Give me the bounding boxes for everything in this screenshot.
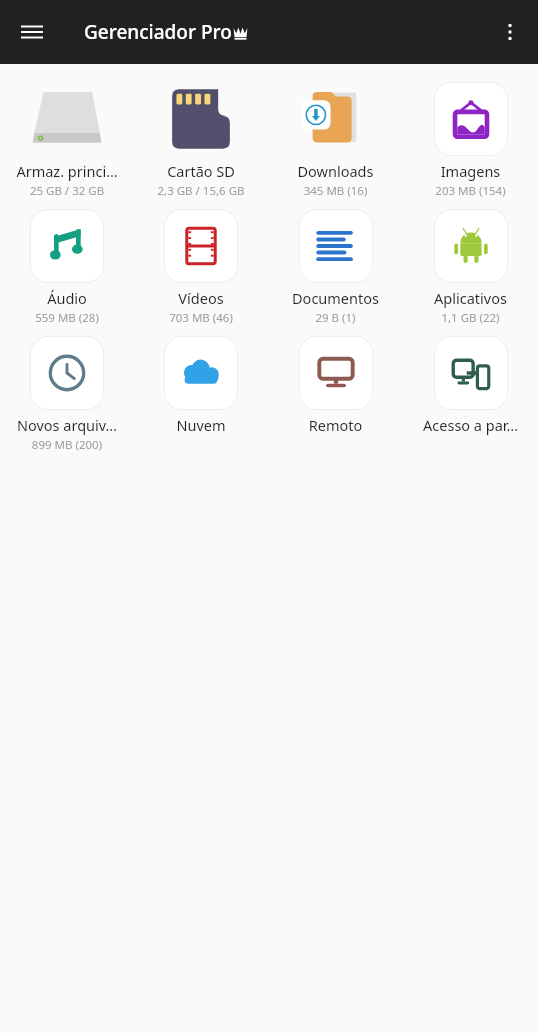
staticText: Documentos (270, 288, 401, 308)
staticText: Remoto (270, 415, 401, 435)
staticText: Downloads (270, 161, 401, 181)
staticText: 1,1 GB (22) (405, 310, 536, 326)
staticText: 29 B (1) (270, 310, 401, 326)
staticText: 899 MB (200) (2, 437, 132, 453)
button[interactable]: Aplicativos (403, 205, 538, 328)
staticText: 703 MB (46) (136, 310, 266, 326)
button[interactable]: Downloads (268, 78, 403, 201)
button[interactable]: Imagens (403, 78, 538, 201)
button[interactable]: Cartão SD (134, 78, 268, 201)
staticText: Aplicativos (405, 288, 536, 308)
staticText: Vídeos (136, 288, 266, 308)
staticText: Gerenciador Pro (84, 19, 232, 45)
staticText: Nuvem (136, 415, 266, 435)
button[interactable]: Open navigation menu (10, 10, 54, 54)
button[interactable]: Áudio (0, 205, 134, 328)
button[interactable]: More options (488, 10, 532, 54)
button[interactable]: Documentos (268, 205, 403, 328)
staticText: Armaz. princi… (2, 161, 132, 181)
button[interactable]: Vídeos (134, 205, 268, 328)
staticText: Imagens (405, 161, 536, 181)
staticText: 203 MB (154) (405, 183, 536, 199)
staticText: Novos arquiv… (2, 415, 132, 435)
staticText: Áudio (2, 288, 132, 308)
button[interactable]: Acesso a par… (403, 332, 538, 437)
button[interactable]: Novos arquiv… (0, 332, 134, 455)
staticText: 559 MB (28) (2, 310, 132, 326)
button[interactable]: Nuvem (134, 332, 268, 437)
staticText: Cartão SD (136, 161, 266, 181)
staticText: 2,3 GB / 15,6 GB (136, 183, 266, 199)
staticText: 345 MB (16) (270, 183, 401, 199)
staticText: Acesso a par… (405, 415, 536, 435)
staticText: 25 GB / 32 GB (2, 183, 132, 199)
button[interactable]: Remoto (268, 332, 403, 437)
button[interactable]: Armaz. princi… (0, 78, 134, 201)
